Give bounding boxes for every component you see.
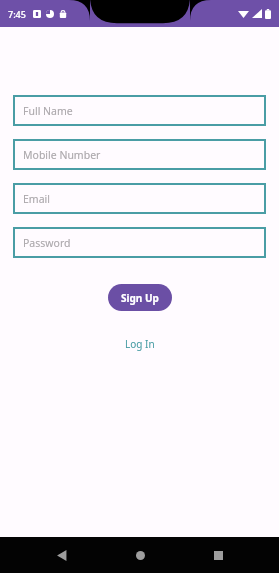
staticText: Full Name — [23, 104, 73, 118]
button[interactable]: Sign Up — [108, 284, 172, 311]
staticText: Mobile Number — [23, 148, 101, 162]
button[interactable]: Full Name — [13, 95, 266, 126]
staticText: Password — [23, 236, 71, 250]
staticText: Log In — [125, 337, 155, 351]
button[interactable]: Log In — [113, 333, 167, 355]
button[interactable]: Email — [13, 183, 266, 214]
button[interactable]: Home — [122, 537, 158, 573]
button[interactable]: Back — [43, 537, 79, 573]
staticText: Email — [23, 192, 50, 206]
button[interactable]: Recent apps — [200, 537, 236, 573]
button[interactable]: Mobile Number — [13, 139, 266, 170]
button[interactable]: Password — [13, 227, 266, 258]
staticText: 7:45 — [8, 8, 26, 20]
staticText: Sign Up — [121, 291, 159, 305]
